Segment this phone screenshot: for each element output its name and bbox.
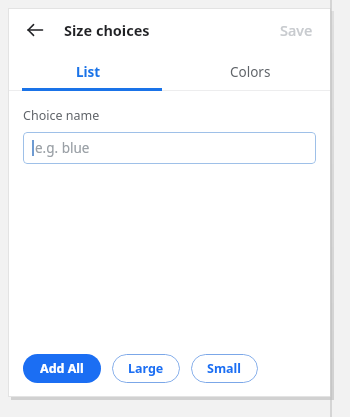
staticText: Save [280, 20, 313, 40]
staticText: Large [128, 360, 164, 377]
staticText: Colors [230, 63, 271, 81]
button[interactable]: Small [191, 354, 258, 383]
button[interactable]: Back [17, 12, 53, 48]
button[interactable]: List [8, 52, 169, 91]
staticText: Size choices [64, 20, 150, 40]
staticText: Add All [40, 360, 84, 377]
button[interactable]: e.g. blue [23, 132, 316, 164]
button[interactable]: Add All [23, 354, 101, 383]
button[interactable]: Colors [169, 52, 331, 91]
staticText: List [76, 63, 101, 81]
button[interactable]: Save [270, 14, 323, 46]
staticText: Choice name [23, 107, 100, 124]
staticText: e.g. blue [35, 139, 90, 157]
staticText: Small [207, 360, 242, 377]
button[interactable]: Large [112, 354, 180, 383]
